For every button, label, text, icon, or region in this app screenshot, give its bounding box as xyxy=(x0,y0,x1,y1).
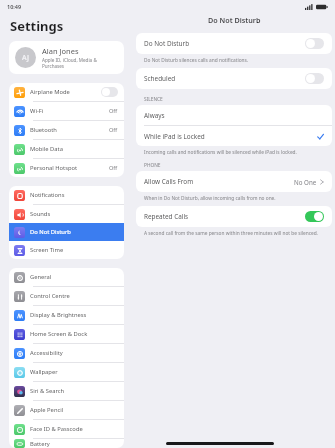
staticText: General xyxy=(30,273,52,281)
staticText: Repeated Calls xyxy=(144,212,189,221)
staticText: Apple Pencil xyxy=(30,406,64,414)
button[interactable]: Siri & Search xyxy=(9,382,124,400)
staticText: When in Do Not Disturb, allow incoming c… xyxy=(144,195,276,202)
staticText: Off xyxy=(109,164,118,172)
staticText: Face ID & Passcode xyxy=(30,425,83,433)
staticText: Scheduled xyxy=(144,74,176,83)
button[interactable]: AJ xyxy=(9,41,124,74)
staticText: Settings xyxy=(10,17,64,35)
button[interactable]: Allow Calls From xyxy=(136,171,332,192)
button[interactable]: Bluetooth xyxy=(9,121,124,139)
button[interactable]: Repeated Calls xyxy=(136,206,332,227)
staticText: While iPad is Locked xyxy=(144,132,205,141)
staticText: 10:49 xyxy=(7,3,22,10)
button[interactable]: Do Not Disturb toggle xyxy=(305,38,324,49)
button[interactable]: Personal Hotspot xyxy=(9,159,124,177)
button[interactable]: Do Not Disturb xyxy=(136,33,332,54)
staticText: Do Not Disturb xyxy=(208,15,261,25)
button[interactable]: Wi-Fi xyxy=(9,102,124,120)
button[interactable]: Airplane Mode toggle xyxy=(101,87,118,97)
staticText: No One xyxy=(294,178,317,186)
staticText: Off xyxy=(109,126,118,134)
staticText: Sounds xyxy=(30,210,51,218)
button[interactable]: Display & Brightness xyxy=(9,306,124,324)
staticText: Notifications xyxy=(30,191,65,199)
staticText: Mobile Data xyxy=(30,145,63,153)
button[interactable]: Airplane Mode xyxy=(9,83,124,101)
staticText: PHONE xyxy=(144,162,161,169)
staticText: Personal Hotspot xyxy=(30,164,78,172)
staticText: SILENCE xyxy=(144,96,163,103)
staticText: Off xyxy=(109,107,118,115)
staticText: Wi-Fi xyxy=(30,107,44,115)
button[interactable]: Do Not Disturb xyxy=(9,223,124,241)
button[interactable]: General xyxy=(9,268,124,286)
staticText: Screen Time xyxy=(30,246,64,254)
button[interactable]: Control Centre xyxy=(9,287,124,305)
button[interactable]: Sounds xyxy=(9,205,124,223)
button[interactable]: Screen Time xyxy=(9,241,124,259)
staticText: Siri & Search xyxy=(30,387,65,395)
staticText: Incoming calls and notifications will be… xyxy=(144,149,297,156)
staticText: Allow Calls From xyxy=(144,177,194,186)
staticText: Display & Brightness xyxy=(30,311,87,319)
staticText: Always xyxy=(144,111,165,120)
staticText: Bluetooth xyxy=(30,126,57,134)
staticText: Wallpaper xyxy=(30,368,58,376)
button[interactable]: Repeated Calls toggle xyxy=(305,211,324,222)
button[interactable]: Accessibility xyxy=(9,344,124,362)
staticText: AJ xyxy=(22,53,29,63)
button[interactable]: Wallpaper xyxy=(9,363,124,381)
button[interactable]: Apple Pencil xyxy=(9,401,124,419)
button[interactable]: Scheduled xyxy=(136,68,332,89)
button[interactable]: Scheduled toggle xyxy=(305,73,324,84)
staticText: Do Not Disturb xyxy=(30,228,71,236)
staticText: Home Screen & Dock xyxy=(30,330,88,338)
staticText: Alan Jones xyxy=(42,46,79,56)
staticText: Battery xyxy=(30,440,50,448)
staticText: Control Centre xyxy=(30,292,70,300)
staticText: Do Not Disturb xyxy=(144,39,190,48)
button[interactable]: Notifications xyxy=(9,186,124,204)
staticText: A second call from the same person withi… xyxy=(144,230,318,237)
staticText: Do Not Disturb silences calls and notifi… xyxy=(144,57,249,64)
button[interactable]: Mobile Data xyxy=(9,140,124,158)
staticText: Accessibility xyxy=(30,349,63,357)
staticText: Airplane Mode xyxy=(30,88,70,96)
button[interactable]: Face ID & Passcode xyxy=(9,420,124,438)
button[interactable]: Battery xyxy=(9,439,124,448)
button[interactable]: While iPad is Locked xyxy=(136,126,332,146)
staticText: Apple ID, iCloud, Media & Purchases xyxy=(42,57,118,69)
button[interactable]: Always xyxy=(136,105,332,125)
button[interactable]: Home Screen & Dock xyxy=(9,325,124,343)
